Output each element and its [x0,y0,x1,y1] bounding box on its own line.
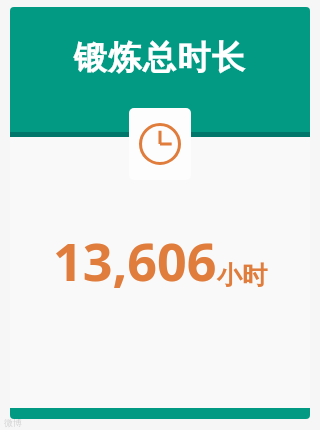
staticText: 微博 [4,417,22,428]
button[interactable]: Total workout duration [129,108,191,180]
staticText: 锻炼总时长 [10,37,310,79]
button[interactable]: 锻炼总时长 [10,7,310,419]
staticText: 13,606 [53,225,217,296]
staticText: 小时 [217,260,267,291]
